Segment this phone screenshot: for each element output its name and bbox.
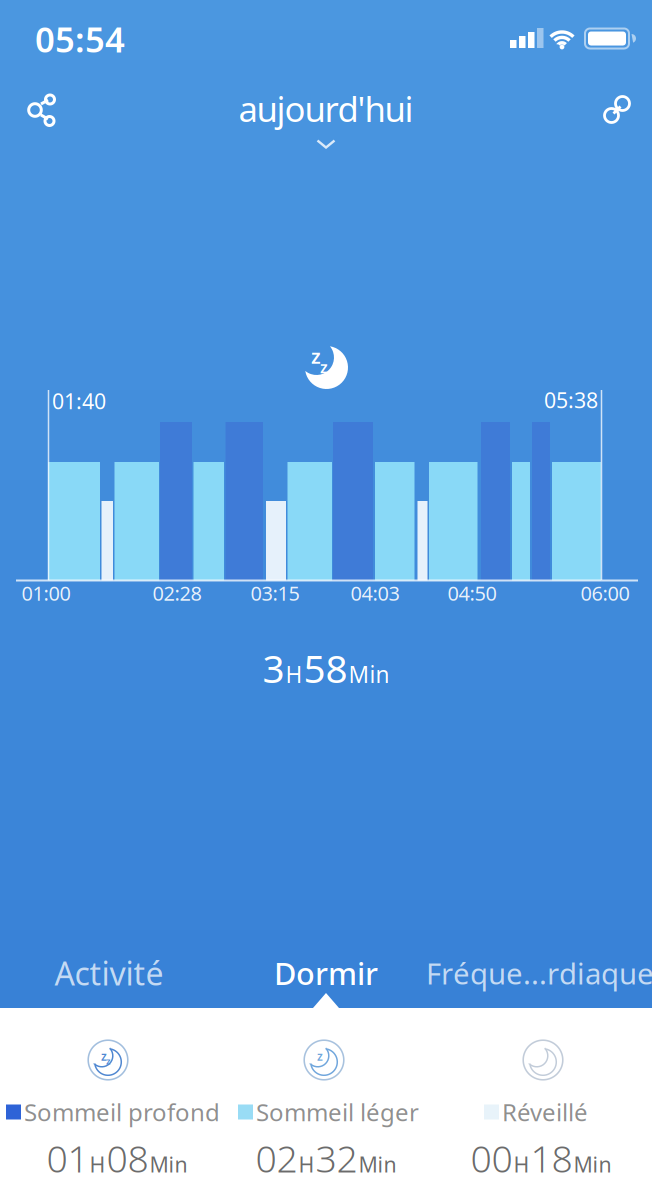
staticText: Min (149, 1150, 187, 1178)
staticText: z (311, 343, 321, 369)
staticText: 05:54 (35, 16, 125, 62)
staticText: 05:38 (544, 386, 598, 414)
staticText: 3 (262, 642, 284, 694)
staticText: Dormir (274, 953, 378, 993)
staticText: Activité (54, 952, 163, 994)
staticText: Sommeil profond (24, 1096, 220, 1128)
staticText: Sommeil léger (256, 1096, 419, 1128)
staticText: 02:28 (152, 580, 201, 606)
staticText: Min (358, 1150, 396, 1178)
staticText: 58 (303, 642, 347, 694)
staticText: Min (348, 659, 389, 689)
staticText: Réveillé (502, 1096, 588, 1128)
staticText: aujourd'hui (238, 85, 413, 131)
staticText: 03:15 (250, 580, 299, 606)
staticText: z (106, 1055, 111, 1067)
staticText: 04:03 (350, 580, 399, 606)
staticText: 02 (255, 1133, 297, 1183)
staticText: Min (573, 1150, 611, 1178)
staticText: 04:50 (447, 580, 496, 606)
staticText: H (513, 1150, 529, 1178)
button[interactable]: Fréque...rdiaque (431, 943, 649, 1003)
staticText: 18 (530, 1133, 572, 1183)
staticText: H (298, 1150, 314, 1178)
button[interactable]: Share (9, 82, 65, 138)
button[interactable]: Activité (0, 943, 217, 1003)
button[interactable]: aujourd'hui (238, 85, 413, 148)
staticText: 01:40 (52, 387, 106, 415)
staticText: z (317, 1048, 323, 1064)
staticText: 00 (470, 1133, 512, 1183)
staticText: 32 (315, 1133, 357, 1183)
staticText: 01 (46, 1133, 88, 1183)
staticText: 01:00 (21, 580, 70, 606)
staticText: z (101, 1048, 107, 1064)
staticText: z (320, 356, 328, 378)
button[interactable]: Dormir (217, 943, 434, 1003)
staticText: 06:00 (580, 580, 629, 606)
staticText: H (89, 1150, 105, 1178)
button[interactable]: Link device (589, 82, 645, 138)
staticText: Fréque...rdiaque (426, 953, 652, 992)
staticText: H (285, 659, 302, 689)
staticText: 08 (106, 1133, 148, 1183)
